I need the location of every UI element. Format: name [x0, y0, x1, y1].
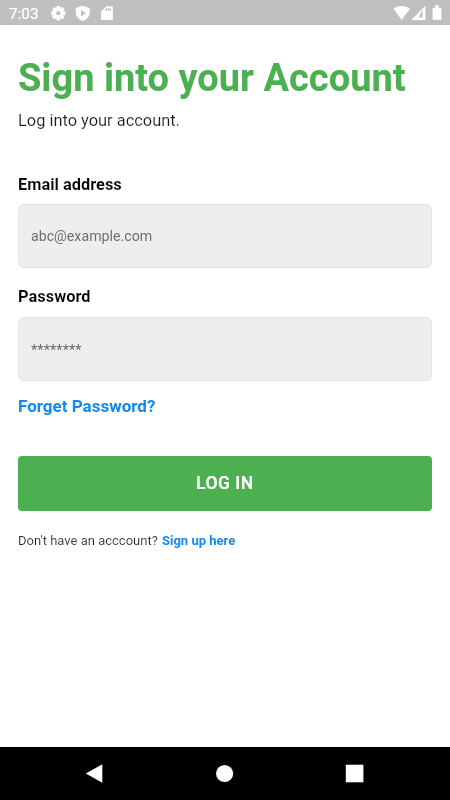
staticText: Password	[18, 287, 91, 306]
button[interactable]: ********	[18, 317, 432, 381]
staticText: Forget Password?	[18, 396, 156, 416]
staticText: Email address	[18, 175, 122, 194]
staticText: Log into your account.	[18, 111, 180, 130]
staticText: Sign up here	[162, 533, 236, 548]
button[interactable]: Home	[195, 747, 255, 800]
button[interactable]: LOG IN	[18, 456, 432, 511]
staticText: 7:03	[9, 5, 39, 23]
button[interactable]: Back	[64, 747, 124, 800]
staticText: Sign into your Account	[18, 56, 406, 101]
staticText: ********	[31, 341, 82, 358]
staticText: LOG IN	[196, 473, 254, 494]
staticText: Don't have an acccount?	[18, 533, 162, 548]
button[interactable]: abc@example.com	[18, 204, 432, 268]
button[interactable]: Forget Password?	[18, 396, 156, 416]
button[interactable]: Recent apps	[325, 747, 385, 800]
button[interactable]: Sign up here	[162, 533, 236, 548]
staticText: abc@example.com	[31, 228, 153, 245]
